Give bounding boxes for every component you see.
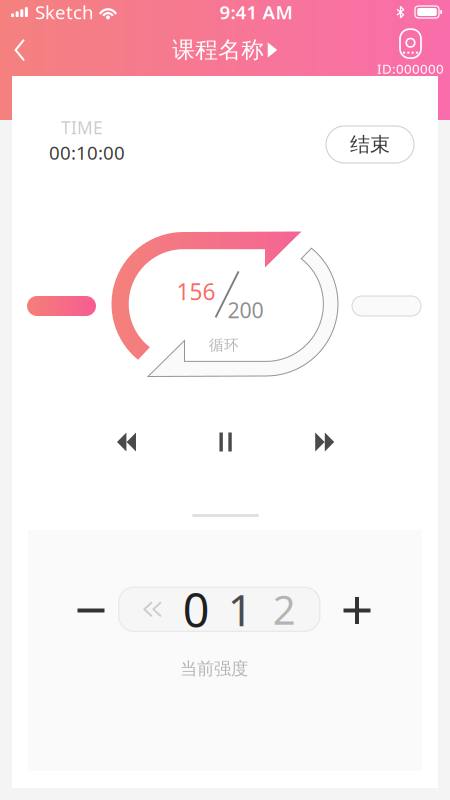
staticText: 当前强度 bbox=[180, 658, 248, 679]
staticText: ID:000000 bbox=[377, 60, 444, 77]
staticText: 156 bbox=[177, 276, 216, 307]
button[interactable]: Next bbox=[297, 420, 353, 464]
staticText: 结束 bbox=[350, 132, 390, 157]
staticText: Sketch bbox=[35, 0, 94, 24]
staticText: TIME bbox=[61, 116, 103, 139]
button[interactable]: Increase intensity bbox=[331, 584, 383, 636]
staticText: 200 bbox=[227, 296, 263, 324]
staticText: 0 bbox=[183, 578, 210, 640]
button[interactable]: Decrease intensity bbox=[65, 584, 117, 636]
button[interactable]: 结束 bbox=[326, 126, 414, 163]
button[interactable]: Pause bbox=[198, 420, 254, 464]
staticText: 循环 bbox=[209, 336, 239, 354]
staticText: 9:41 AM bbox=[219, 0, 292, 24]
staticText: 1 bbox=[228, 580, 253, 638]
staticText: 2 bbox=[273, 583, 296, 636]
button[interactable]: Device ID 000000 bbox=[377, 23, 450, 77]
button[interactable]: Back bbox=[0, 29, 41, 71]
staticText: 00:10:00 bbox=[49, 140, 125, 165]
staticText: 课程名称 bbox=[172, 36, 264, 64]
button[interactable]: Previous bbox=[98, 420, 154, 464]
